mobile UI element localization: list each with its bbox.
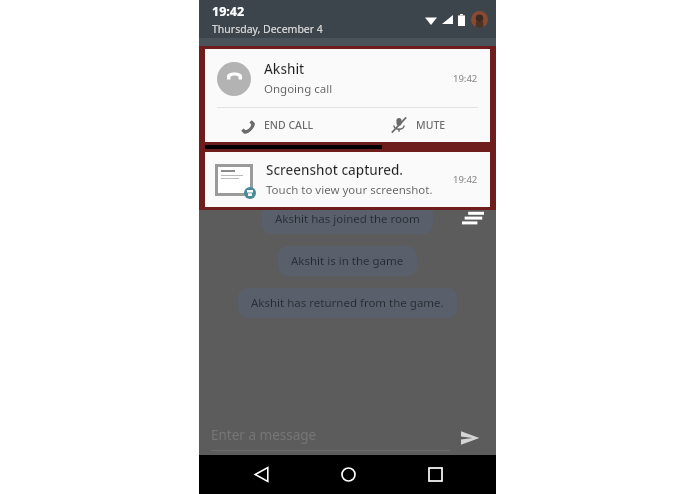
button[interactable]: Profile — [471, 11, 488, 28]
staticText: Enter a message — [211, 426, 317, 444]
staticText: 19:42 — [453, 173, 478, 186]
button[interactable]: Akshit has joined the room — [262, 204, 433, 234]
staticText: Touch to view your screenshot. — [266, 182, 433, 198]
staticText: Screenshot captured. — [266, 161, 403, 179]
staticText: MUTE — [416, 118, 446, 132]
button[interactable]: Home — [326, 455, 370, 494]
staticText: Akshit — [264, 60, 305, 78]
button[interactable]: Enter a message — [205, 426, 450, 451]
staticText: Thursday, December 4 — [212, 22, 323, 36]
button[interactable]: Akshit has returned from the game. — [238, 288, 457, 318]
button[interactable]: END CALL — [205, 108, 347, 142]
other: Menu — [462, 210, 484, 228]
staticText: Akshit is in the game — [291, 253, 404, 269]
button[interactable]: MUTE — [347, 108, 490, 142]
staticText: Akshit has joined the room — [275, 211, 420, 227]
staticText: Akshit has returned from the game. — [251, 295, 444, 311]
staticText: END CALL — [264, 118, 314, 132]
button[interactable]: Screenshot captured. — [205, 152, 490, 207]
staticText: 19:42 — [212, 3, 245, 20]
staticText: 19:42 — [453, 72, 478, 85]
button[interactable]: Recents — [413, 455, 457, 494]
button[interactable]: Back — [239, 455, 283, 494]
button[interactable]: Send — [450, 418, 490, 458]
staticText: Ongoing call — [264, 81, 333, 97]
button[interactable]: Akshit is in the game — [278, 246, 417, 276]
button[interactable]: Akshit — [205, 49, 490, 142]
